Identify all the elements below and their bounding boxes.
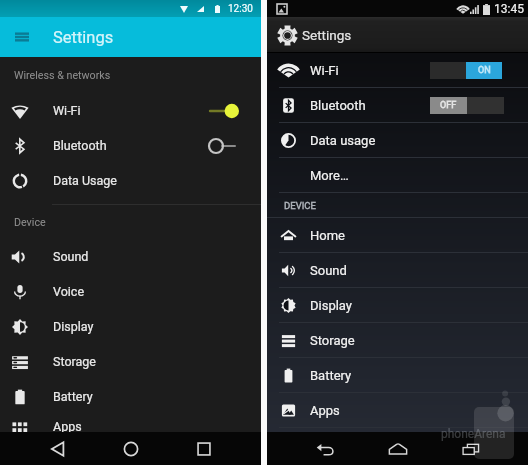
button[interactable]: Home (375, 432, 421, 465)
button[interactable]: Open navigation drawer (7, 22, 37, 52)
staticText: Display (53, 319, 94, 334)
button[interactable]: Home (108, 432, 154, 465)
button[interactable]: More… (267, 158, 528, 192)
button[interactable]: Wi-Fi (0, 93, 261, 128)
button[interactable]: Back (35, 432, 81, 465)
staticText: DEVICE (284, 200, 316, 211)
button[interactable]: Wi-Fi (267, 53, 528, 87)
staticText: Wi-Fi (310, 63, 339, 78)
staticText: OFF (440, 100, 457, 111)
staticText: Battery (310, 368, 352, 383)
button[interactable]: Apps (0, 419, 261, 432)
staticText: Display (310, 298, 352, 313)
staticText: Apps (310, 403, 340, 418)
button[interactable]: Storage (267, 323, 528, 357)
staticText: Sound (310, 263, 347, 278)
staticText: Wireless & networks (14, 69, 111, 82)
button[interactable]: Recent apps (181, 432, 227, 465)
button[interactable]: Bluetooth (267, 88, 528, 122)
staticText: ON (478, 65, 491, 76)
button[interactable]: Sound (267, 253, 528, 287)
button[interactable]: Display (0, 309, 261, 344)
button[interactable]: Voice (0, 274, 261, 309)
button[interactable]: Recent apps (448, 432, 494, 465)
staticText: Settings (53, 28, 114, 47)
staticText: Battery (53, 389, 93, 404)
staticText: More… (310, 168, 349, 183)
button[interactable]: Battery (267, 358, 528, 392)
button[interactable]: Battery (0, 379, 261, 414)
staticText: Sound (53, 249, 89, 264)
button[interactable]: Sound (0, 239, 261, 274)
button[interactable]: Data usage (267, 123, 528, 157)
button[interactable]: Bluetooth (0, 128, 261, 163)
staticText: Device (14, 216, 46, 229)
staticText: Storage (310, 333, 355, 348)
staticText: Data Usage (53, 173, 117, 188)
staticText: Home (310, 228, 345, 243)
button[interactable]: Apps (267, 393, 528, 427)
staticText: Apps (53, 419, 82, 432)
staticText: 13:45 (494, 2, 524, 16)
staticText: phoneArena (441, 427, 506, 441)
staticText: Bluetooth (53, 138, 107, 153)
staticText: 12:30 (228, 3, 253, 15)
staticText: Voice (53, 284, 85, 299)
button[interactable]: Storage (0, 344, 261, 379)
staticText: Data usage (310, 133, 376, 148)
staticText: Bluetooth (310, 98, 366, 113)
staticText: Storage (53, 354, 96, 369)
button[interactable]: Data Usage (0, 163, 261, 198)
staticText: Wi-Fi (53, 103, 81, 118)
staticText: Settings (302, 27, 352, 43)
button[interactable]: Back (302, 432, 348, 465)
button[interactable]: Display (267, 288, 528, 322)
button[interactable]: Home (267, 218, 528, 252)
